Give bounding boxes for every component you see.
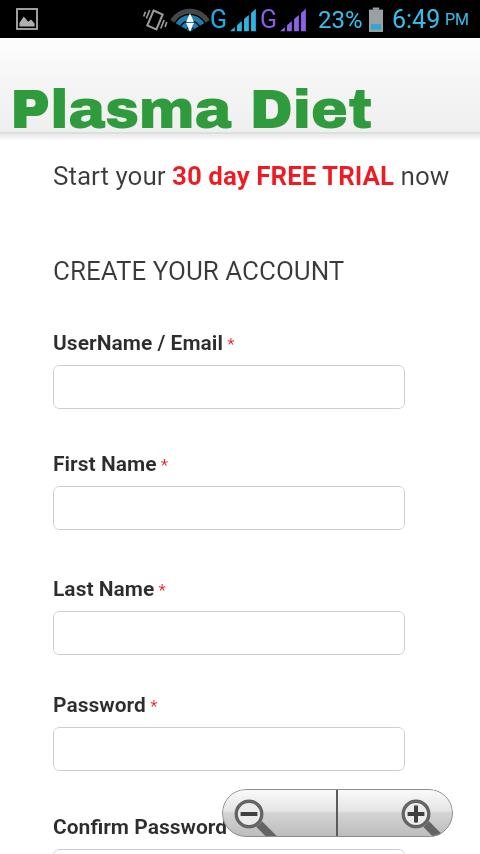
- button[interactable]: Confirm Password: [53, 849, 405, 854]
- button[interactable]: Password: [53, 727, 405, 771]
- staticText: 6:49: [392, 5, 441, 34]
- button[interactable]: Zoom out: [222, 789, 336, 837]
- staticText: PM: [445, 10, 470, 29]
- staticText: 23%: [318, 6, 363, 34]
- staticText: Start your 30 day FREE TRIAL now: [53, 161, 450, 191]
- button[interactable]: Last Name: [53, 611, 405, 655]
- staticText: UserName / Email *: [53, 331, 235, 356]
- staticText: CREATE YOUR ACCOUNT: [53, 256, 345, 286]
- button[interactable]: First Name: [53, 486, 405, 530]
- staticText: Confirm Password *: [53, 815, 239, 840]
- staticText: Password *: [53, 693, 158, 718]
- staticText: Last Name *: [53, 577, 166, 602]
- staticText: First Name *: [53, 452, 169, 477]
- staticText: Plasma Diet: [10, 79, 373, 140]
- staticText: G: [210, 5, 228, 34]
- button[interactable]: UserName / Email: [53, 365, 405, 409]
- button[interactable]: Zoom in: [338, 789, 453, 837]
- staticText: G: [260, 5, 278, 34]
